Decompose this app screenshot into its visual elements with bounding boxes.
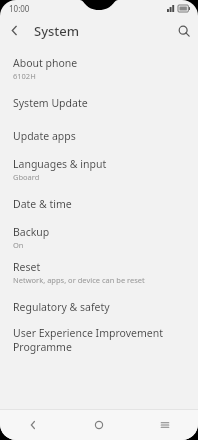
staticText: 10:00 (9, 3, 30, 14)
staticText: About phone (13, 56, 78, 70)
button[interactable]: Home (66, 410, 132, 440)
staticText: Network, apps, or device can be reset (13, 275, 145, 285)
staticText: System (34, 22, 80, 40)
staticText: Languages & input (13, 157, 107, 171)
staticText: Regulatory & safety (13, 300, 110, 314)
button[interactable]: Languages & input (0, 152, 198, 187)
button[interactable]: System Update (0, 86, 198, 119)
button[interactable]: Back (0, 17, 28, 44)
button[interactable]: Recent apps (132, 410, 198, 440)
button[interactable]: Reset (0, 255, 198, 290)
staticText: Reset (13, 260, 41, 274)
button[interactable]: Backup (0, 220, 198, 255)
staticText: Date & time (13, 197, 72, 211)
button[interactable]: Date & time (0, 187, 198, 220)
button[interactable]: Search (170, 17, 198, 44)
button[interactable]: Back (0, 410, 66, 440)
staticText: Update apps (13, 129, 76, 143)
staticText: 6102H (13, 71, 36, 81)
button[interactable]: About phone (0, 51, 198, 86)
staticText: User Experience Improvement Programme (13, 326, 185, 354)
staticText: Backup (13, 225, 50, 239)
button[interactable]: Update apps (0, 119, 198, 152)
staticText: System Update (13, 96, 88, 110)
button[interactable]: User Experience Improvement Programme (0, 323, 198, 356)
staticText: On (13, 240, 24, 250)
button[interactable]: Regulatory & safety (0, 290, 198, 323)
staticText: Gboard (13, 172, 40, 182)
